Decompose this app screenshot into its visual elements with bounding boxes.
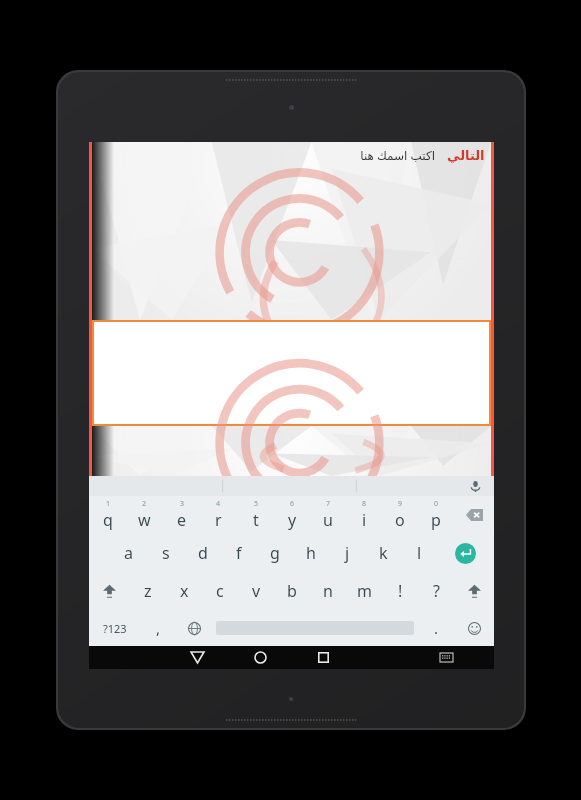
button[interactable]: 7 xyxy=(310,496,346,534)
button[interactable]: b xyxy=(274,572,310,610)
button[interactable]: x xyxy=(166,572,202,610)
button[interactable]: اكتب اسمك هنا xyxy=(356,145,439,165)
staticText: y xyxy=(288,509,297,531)
staticText: c xyxy=(216,580,224,602)
staticText: 1 xyxy=(106,499,111,509)
staticText: i xyxy=(362,509,367,531)
button[interactable]: g xyxy=(257,534,293,572)
staticText: , xyxy=(156,618,161,638)
staticText: r xyxy=(215,509,222,531)
staticText: x xyxy=(180,580,189,602)
button[interactable]: 4 xyxy=(200,496,237,534)
button[interactable]: h xyxy=(293,534,329,572)
staticText: 9 xyxy=(398,499,403,509)
staticText: b xyxy=(287,580,297,602)
button[interactable]: 1 xyxy=(89,496,126,534)
button[interactable]: Backspace xyxy=(454,496,494,534)
staticText: . xyxy=(434,618,439,638)
button[interactable]: Shift xyxy=(89,572,130,610)
button[interactable]: f xyxy=(221,534,257,572)
staticText: t xyxy=(253,509,259,531)
staticText: a xyxy=(124,542,133,564)
staticText: e xyxy=(177,509,187,531)
staticText: l xyxy=(417,542,422,564)
button[interactable]: Change language xyxy=(176,610,212,646)
button[interactable]: j xyxy=(329,534,365,572)
button[interactable]: ?123 xyxy=(89,610,140,646)
staticText: 8 xyxy=(362,499,367,509)
staticText: z xyxy=(144,580,152,602)
button[interactable]: 3 xyxy=(163,496,200,534)
button[interactable]: Home xyxy=(229,646,292,669)
button[interactable]: التالي xyxy=(445,148,487,163)
staticText: s xyxy=(162,542,170,564)
staticText: w xyxy=(138,509,151,531)
button[interactable]: Switch keyboard xyxy=(418,646,475,669)
button[interactable]: , xyxy=(140,610,176,646)
button[interactable]: . xyxy=(418,610,454,646)
button[interactable]: k xyxy=(365,534,401,572)
staticText: 3 xyxy=(180,499,185,509)
staticText: 2 xyxy=(142,499,147,509)
staticText: o xyxy=(395,509,405,531)
button[interactable]: 6 xyxy=(274,496,310,534)
button[interactable]: Back xyxy=(166,646,229,669)
button[interactable] xyxy=(94,322,489,424)
button[interactable]: Recent apps xyxy=(292,646,355,669)
staticText: j xyxy=(345,542,350,564)
button[interactable]: 8 xyxy=(346,496,382,534)
staticText: 5 xyxy=(254,499,259,509)
staticText: k xyxy=(379,542,388,564)
button[interactable]: s xyxy=(147,534,184,572)
staticText: 7 xyxy=(326,499,331,509)
staticText: 4 xyxy=(216,499,221,509)
staticText: ! xyxy=(398,580,403,602)
staticText: v xyxy=(252,580,261,602)
staticText: f xyxy=(236,542,242,564)
button[interactable]: Emoji xyxy=(454,610,494,646)
staticText: ? xyxy=(433,580,440,602)
button[interactable]: d xyxy=(184,534,221,572)
staticText: اكتب اسمك هنا xyxy=(360,147,435,163)
staticText: ?123 xyxy=(103,621,127,636)
button[interactable]: n xyxy=(310,572,346,610)
button[interactable]: m xyxy=(346,572,382,610)
staticText: 0 xyxy=(434,499,439,509)
staticText: m xyxy=(357,580,372,602)
button[interactable]: Shift xyxy=(454,572,494,610)
button[interactable]: z xyxy=(130,572,166,610)
staticText: n xyxy=(323,580,333,602)
staticText: u xyxy=(323,509,333,531)
button[interactable]: Enter xyxy=(437,534,494,572)
button[interactable]: l xyxy=(401,534,437,572)
staticText: g xyxy=(270,542,280,564)
button[interactable]: Voice input xyxy=(466,477,484,495)
button[interactable]: 2 xyxy=(126,496,163,534)
button[interactable]: 9 xyxy=(382,496,418,534)
button[interactable]: v xyxy=(238,572,274,610)
staticText: h xyxy=(306,542,316,564)
button[interactable]: 5 xyxy=(237,496,274,534)
button[interactable]: a xyxy=(110,534,147,572)
button[interactable]: ? xyxy=(418,572,454,610)
staticText: 6 xyxy=(290,499,295,509)
button[interactable]: c xyxy=(202,572,238,610)
staticText: d xyxy=(198,542,208,564)
staticText: q xyxy=(103,509,113,531)
button[interactable]: 0 xyxy=(418,496,454,534)
staticText: التالي xyxy=(447,148,485,163)
button[interactable]: ! xyxy=(382,572,418,610)
staticText: p xyxy=(431,509,441,531)
